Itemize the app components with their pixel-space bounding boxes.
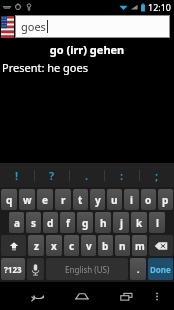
button[interactable]: . [70,163,104,187]
button[interactable]: goes [15,15,170,38]
button[interactable]: ?123 [1,258,25,280]
button[interactable]: . [130,258,146,280]
staticText: h [100,216,107,230]
staticText: l [156,216,159,230]
staticText: n [119,239,126,253]
button[interactable]: q [1,189,17,210]
button[interactable]: Home [69,282,95,310]
staticText: s [31,216,37,230]
button[interactable]: h [95,212,111,233]
staticText: . [137,263,140,275]
staticText: m [135,239,145,253]
staticText: b [102,239,109,253]
button[interactable]: a [9,212,24,233]
staticText: v [86,239,92,253]
button[interactable]: j [113,212,129,233]
button[interactable]: ; [140,163,174,187]
staticText: 12:10 [148,1,172,13]
button[interactable]: l [149,212,165,233]
staticText: g [82,216,89,230]
button[interactable]: u [107,189,122,210]
button[interactable]: ! [0,163,34,187]
button[interactable]: p [158,189,173,210]
button[interactable]: s [26,212,41,233]
staticText: go (irr) gehen [0,42,174,57]
button[interactable]: g [77,212,93,233]
button[interactable]: : [105,163,139,187]
staticText: o [145,193,152,207]
staticText: w [23,193,32,207]
button[interactable]: y [90,189,105,210]
button[interactable]: m [132,235,147,256]
staticText: y [95,193,101,207]
button[interactable]: n [115,235,130,256]
button[interactable]: Delete [149,235,173,256]
staticText: ?123 [4,264,22,275]
button[interactable]: d [43,212,58,233]
button[interactable]: v [81,235,96,256]
staticText: . [85,168,89,183]
button[interactable]: More options [148,282,166,310]
staticText: goes [21,19,46,34]
button[interactable]: English (US) [46,258,128,280]
staticText: i [130,193,133,207]
button[interactable]: Recent apps [113,282,139,310]
staticText: f [66,216,70,230]
button[interactable]: z [28,235,44,256]
staticText: r [61,193,66,207]
staticText: z [34,239,39,253]
staticText: : [120,168,124,183]
staticText: x [51,239,57,253]
button[interactable]: x [46,235,62,256]
button[interactable]: c [64,235,79,256]
staticText: d [47,216,54,230]
button[interactable]: f [60,212,75,233]
button[interactable]: ? [35,163,69,187]
staticText: c [69,239,75,253]
staticText: ? [49,168,55,183]
staticText: ! [15,168,19,183]
button[interactable]: Done [148,258,173,280]
button[interactable]: t [73,189,88,210]
button[interactable]: Back [25,282,51,310]
staticText: u [111,193,118,207]
staticText: a [14,216,20,230]
staticText: e [42,193,48,207]
button[interactable]: r [55,189,71,210]
staticText: j [120,216,123,230]
staticText: Done [150,264,171,275]
button[interactable]: Language: English [1,16,14,38]
staticText: English (US) [65,264,110,275]
staticText: p [162,193,169,207]
staticText: ; [155,168,159,183]
staticText: t [78,193,83,207]
button[interactable]: k [131,212,147,233]
button[interactable]: Voice input [27,258,44,280]
staticText: Present: he goes [2,60,88,75]
button[interactable]: b [98,235,113,256]
button[interactable]: o [141,189,156,210]
button[interactable]: e [37,189,53,210]
button[interactable]: w [19,189,35,210]
staticText: q [6,193,13,207]
button[interactable]: i [124,189,139,210]
staticText: k [136,216,143,230]
button[interactable]: Shift [1,235,26,256]
